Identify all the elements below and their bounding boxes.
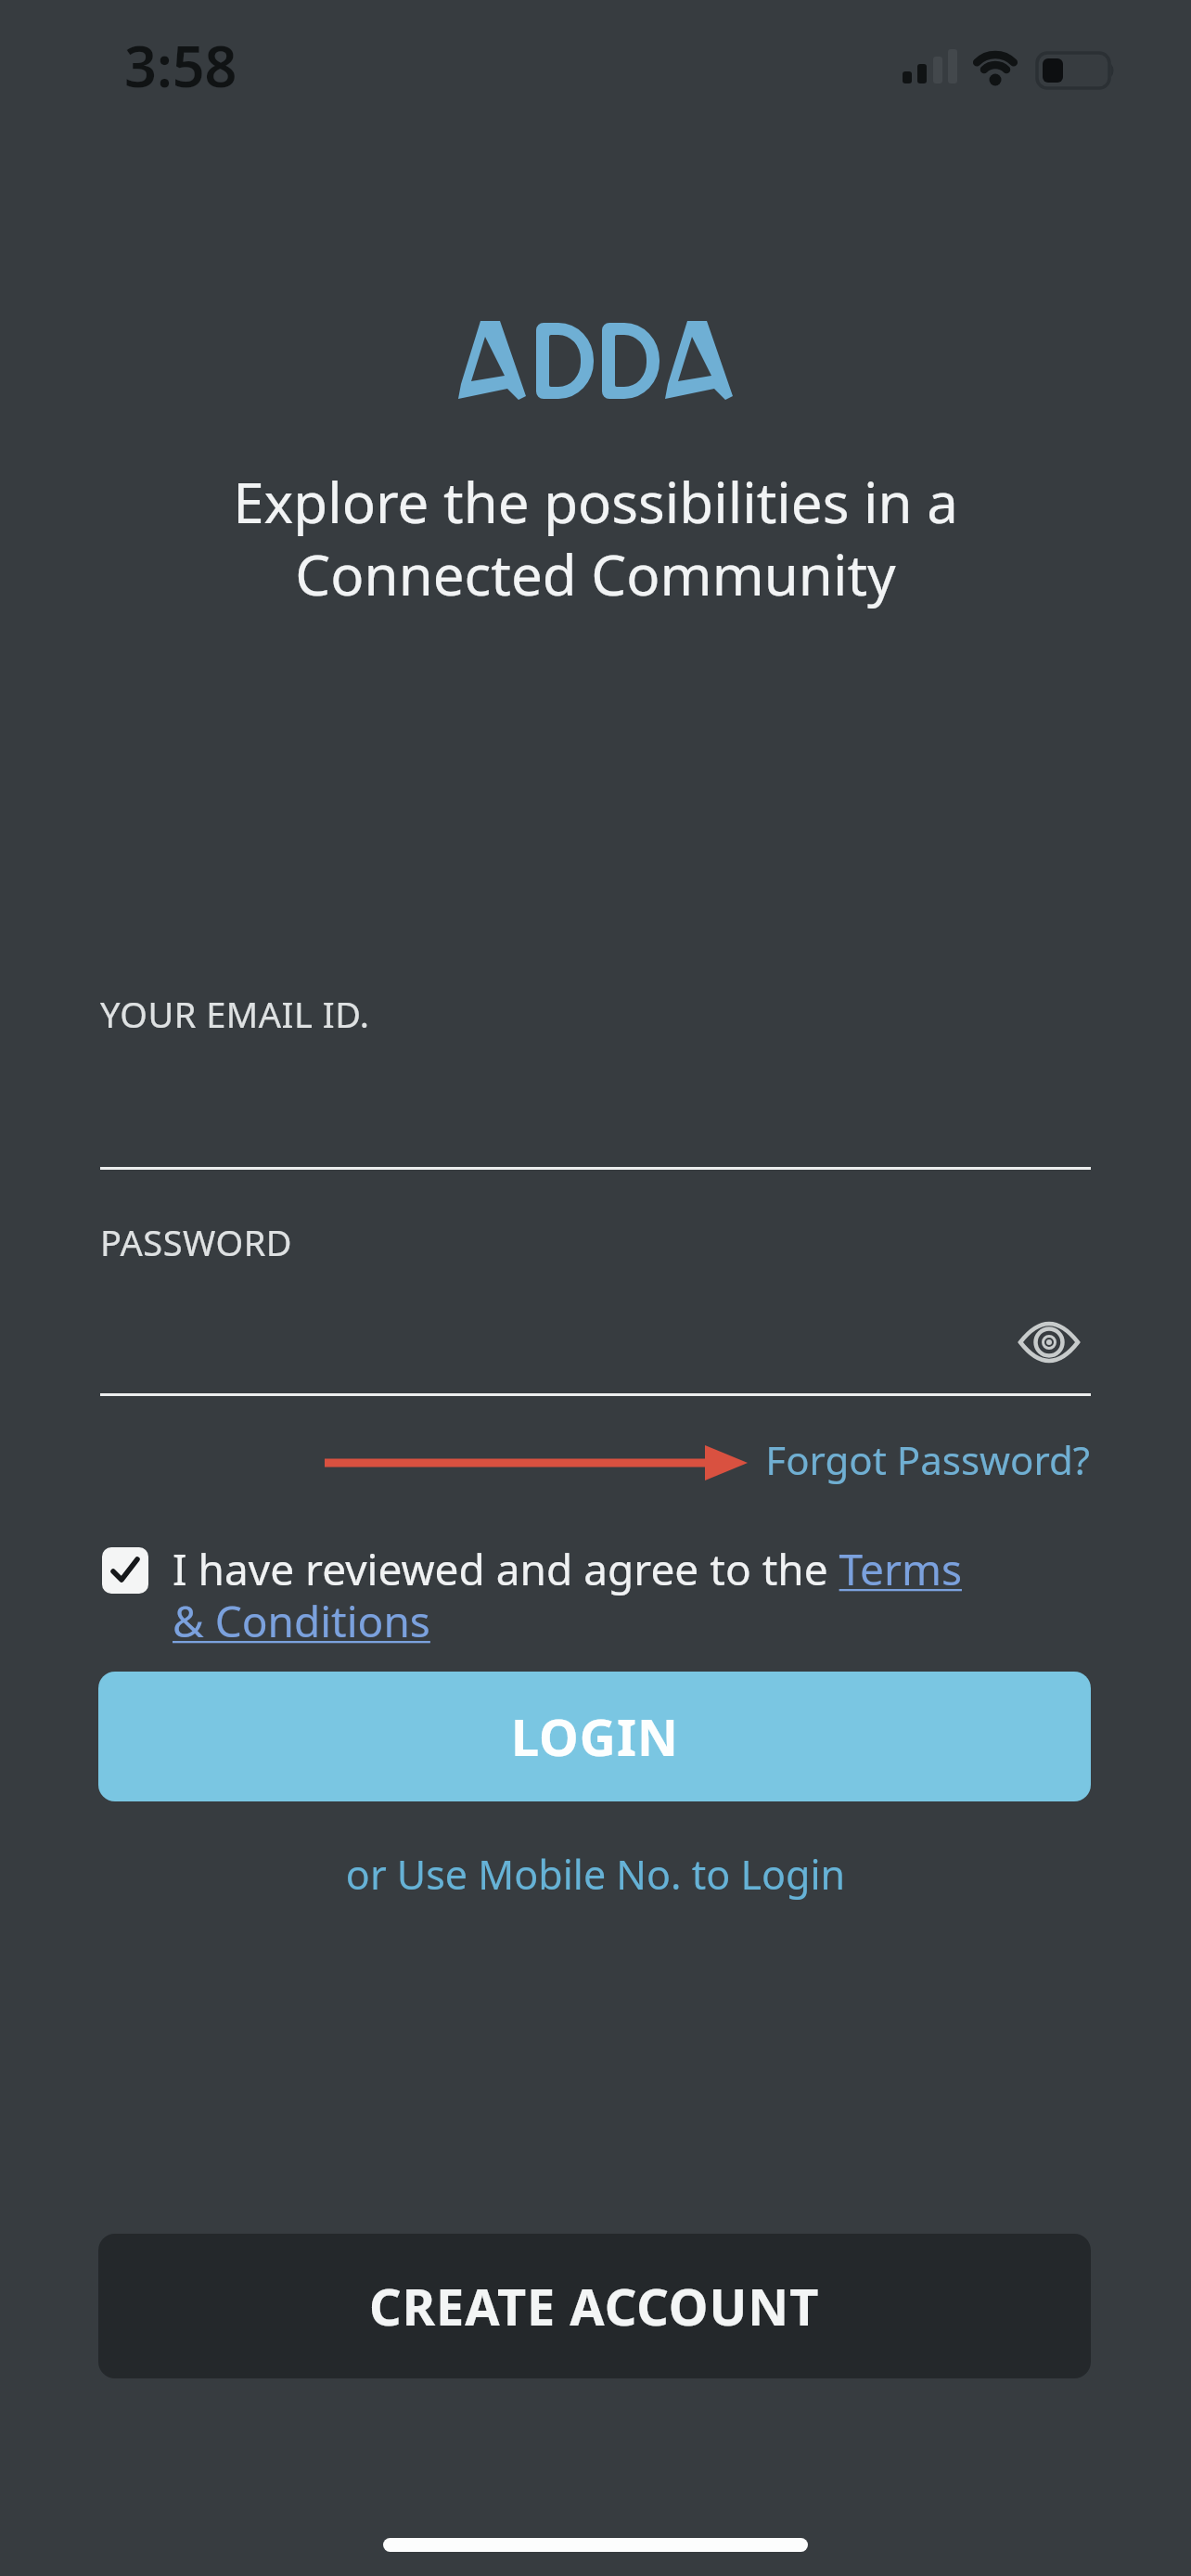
button[interactable]: I have reviewed and agree to the Terms <box>173 1540 962 1598</box>
button[interactable]: CREATE ACCOUNT <box>98 2234 1091 2378</box>
button[interactable]: LOGIN <box>98 1672 1091 1801</box>
button[interactable]: Forgot Password? <box>0 1433 1090 1486</box>
staticText: CREATE ACCOUNT <box>369 2272 820 2340</box>
button[interactable]: or Use Mobile No. to Login <box>0 1847 1191 1902</box>
button[interactable] <box>102 1547 148 1594</box>
button[interactable]: & Conditions <box>173 1592 430 1650</box>
button[interactable] <box>1018 1321 1080 1364</box>
staticText: YOUR EMAIL ID. <box>100 990 370 1038</box>
staticText: Explore the possibilities in a Connected… <box>0 464 1191 612</box>
staticText: LOGIN <box>511 1702 679 1771</box>
button[interactable] <box>457 321 745 409</box>
staticText: 3:58 <box>124 27 237 104</box>
staticText: PASSWORD <box>100 1218 293 1266</box>
